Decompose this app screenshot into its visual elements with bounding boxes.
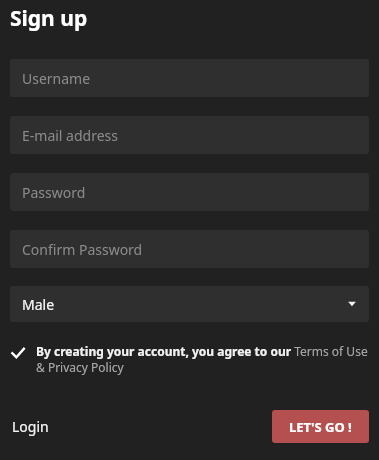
staticText: Confirm Password: [22, 240, 143, 259]
button[interactable]: Confirm Password: [10, 230, 369, 268]
staticText: Male: [22, 295, 55, 314]
staticText: By creating your account, you agree to o…: [36, 343, 369, 376]
button[interactable]: E-mail address: [10, 116, 369, 154]
button[interactable]: Male: [10, 286, 369, 322]
button[interactable]: Login: [10, 411, 51, 442]
button[interactable]: Password: [10, 173, 369, 211]
button[interactable]: Agree to terms checkbox: [10, 343, 369, 376]
staticText: Sign up: [10, 4, 88, 33]
staticText: LET'S GO !: [289, 418, 352, 436]
button[interactable]: Username: [10, 59, 369, 97]
staticText: Password: [22, 183, 86, 202]
staticText: Login: [12, 417, 49, 436]
staticText: Username: [22, 69, 91, 88]
button[interactable]: LET'S GO !: [272, 410, 369, 443]
other: Agree to terms checkbox: [10, 345, 26, 361]
staticText: E-mail address: [22, 126, 118, 145]
